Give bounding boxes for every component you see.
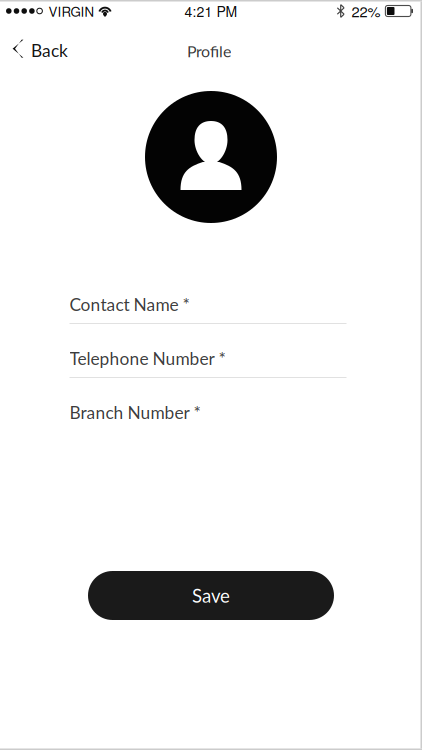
staticText: Telephone Number *: [69, 348, 225, 369]
staticText: Profile: [187, 41, 231, 61]
button[interactable]: Save: [88, 571, 334, 620]
button[interactable]: Branch Number *: [69, 402, 346, 432]
button[interactable]: Telephone Number *: [69, 348, 346, 378]
button[interactable]: Contact Name *: [69, 294, 346, 324]
staticText: Contact Name *: [69, 294, 189, 315]
button[interactable]: Back: [0, 22, 96, 66]
staticText: VIRGIN: [48, 1, 94, 21]
staticText: Save: [192, 584, 230, 607]
staticText: Branch Number *: [69, 402, 200, 423]
staticText: 4:21 PM: [184, 1, 237, 21]
staticText: Back: [31, 40, 68, 61]
staticText: 22%: [351, 0, 380, 21]
